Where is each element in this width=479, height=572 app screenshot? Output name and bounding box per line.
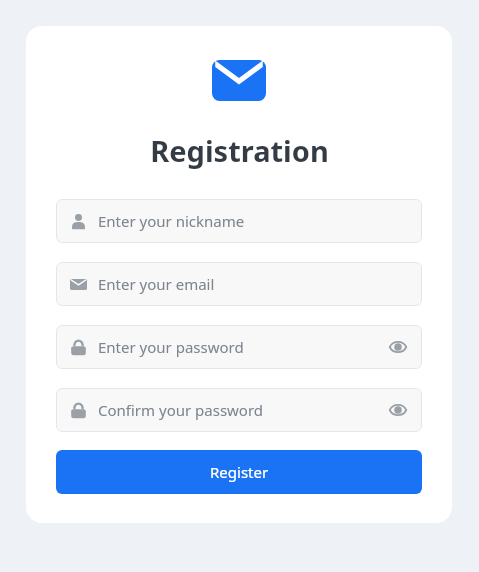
button[interactable]: Register bbox=[56, 450, 422, 494]
button[interactable]: Show password bbox=[386, 398, 410, 422]
button[interactable]: Enter your password bbox=[56, 325, 422, 369]
staticText: Registration bbox=[150, 131, 329, 170]
staticText: Confirm your password bbox=[98, 400, 264, 420]
staticText: Enter your password bbox=[98, 337, 244, 357]
button[interactable]: Enter your email bbox=[56, 262, 422, 306]
button[interactable]: Enter your nickname bbox=[56, 199, 422, 243]
staticText: Register bbox=[210, 462, 269, 482]
staticText: Enter your nickname bbox=[98, 211, 245, 231]
button[interactable]: Confirm your password bbox=[56, 388, 422, 432]
staticText: Enter your email bbox=[98, 274, 215, 294]
button[interactable]: Show password bbox=[386, 335, 410, 359]
